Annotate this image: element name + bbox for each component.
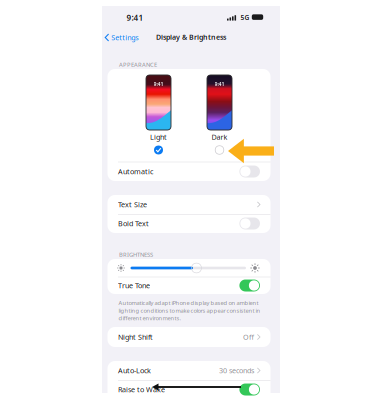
button[interactable]: Night Shift	[107, 327, 270, 347]
button[interactable]: True Tone	[107, 277, 270, 294]
staticText: 9:41	[214, 80, 224, 87]
staticText: Automatic	[118, 167, 153, 176]
staticText: Settings	[111, 33, 138, 42]
staticText: 9:41	[126, 12, 143, 23]
staticText: Dark	[211, 132, 227, 142]
button[interactable]: 9:41	[207, 69, 232, 162]
staticText: Light	[150, 132, 167, 142]
button[interactable]: Automatic	[107, 162, 270, 181]
staticText: Off	[243, 332, 254, 342]
staticText: BRIGHTNESS	[119, 251, 153, 258]
staticText: 9:41	[153, 80, 163, 87]
staticText: 5G	[240, 13, 249, 22]
staticText: True Tone	[118, 281, 150, 290]
button[interactable]: Text Size	[107, 195, 270, 214]
button[interactable]: Bold Text	[107, 214, 270, 233]
staticText: APPEARANCE	[119, 61, 157, 68]
button[interactable]: 9:41	[146, 69, 171, 162]
staticText: Display & Brightness	[156, 32, 226, 42]
staticText: Text Size	[118, 200, 147, 209]
staticText: Auto-Lock	[118, 366, 151, 375]
staticText: Bold Text	[118, 219, 149, 228]
staticText: Night Shift	[118, 332, 153, 342]
staticText: Raise to Wake	[118, 385, 165, 394]
staticText: Automatically adapt iPhone display based…	[118, 299, 260, 322]
button[interactable]: Raise to Wake	[107, 380, 270, 399]
staticText: 30 seconds	[219, 366, 254, 375]
button[interactable]: Auto-Lock	[107, 361, 270, 380]
button[interactable]: Settings	[102, 31, 152, 44]
